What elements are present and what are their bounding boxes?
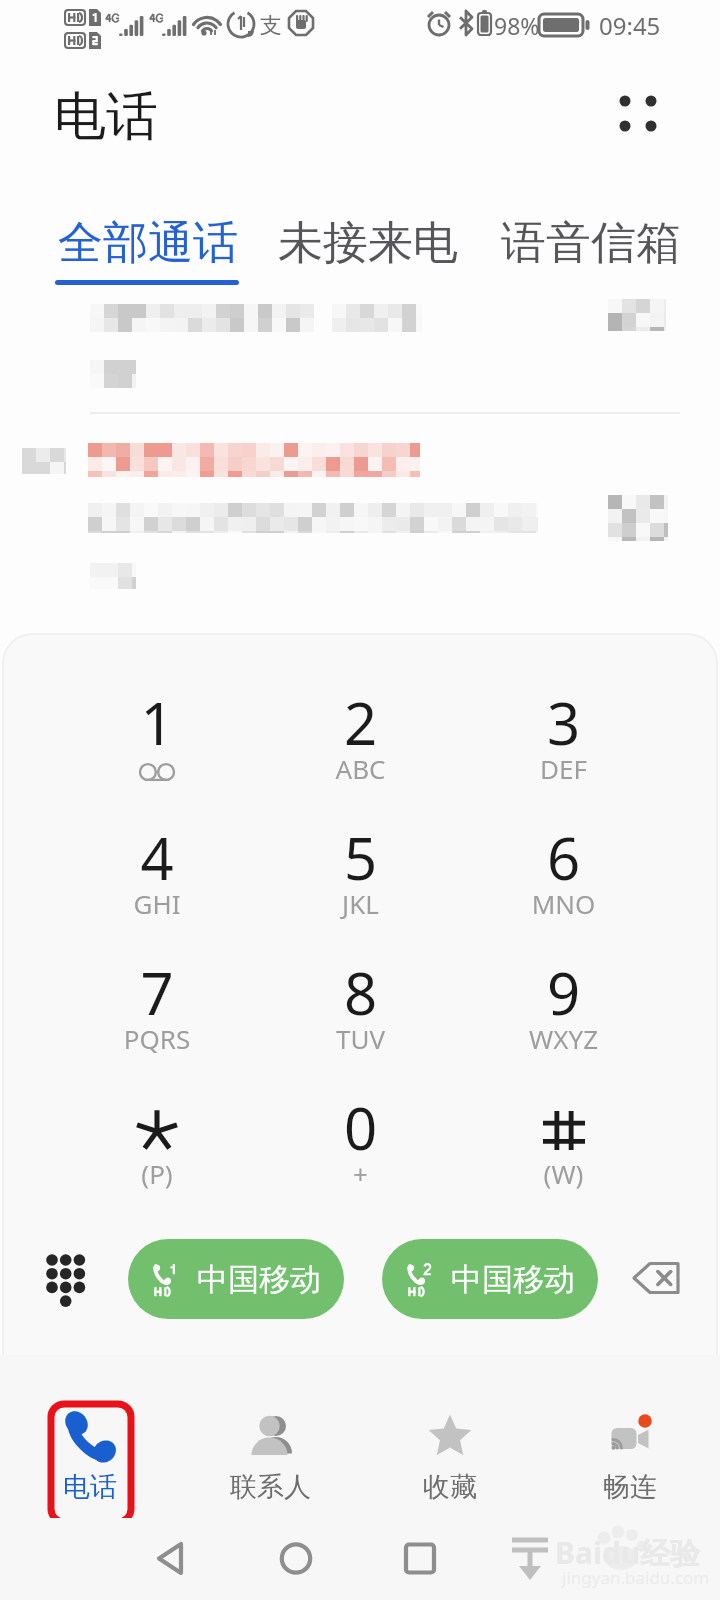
staticText: 收藏 xyxy=(423,1470,477,1504)
staticText: (W) xyxy=(462,1156,665,1191)
button[interactable]: 中国移动 xyxy=(382,1239,598,1319)
staticText: + xyxy=(259,1156,462,1191)
staticText: JKL xyxy=(259,886,462,921)
button[interactable]: 4 xyxy=(55,793,259,928)
button[interactable]: 3 xyxy=(462,658,665,793)
staticText: 中国移动 xyxy=(451,1260,575,1299)
button[interactable]: 未接来电 xyxy=(266,215,469,311)
staticText: 联系人 xyxy=(230,1470,311,1504)
button[interactable]: Call log entry 2 xyxy=(0,419,720,609)
staticText: 语音信箱 xyxy=(501,215,681,272)
button[interactable]: 收藏 xyxy=(360,1355,540,1518)
button[interactable]: Home xyxy=(256,1523,336,1595)
staticText: 2 xyxy=(259,683,462,762)
button[interactable]: 6 xyxy=(462,793,665,928)
button[interactable]: 联系人 xyxy=(180,1355,360,1518)
button[interactable]: 畅连 xyxy=(540,1355,720,1518)
staticText: jingyan.baidu.com xyxy=(562,1566,710,1589)
staticText: 98% xyxy=(494,10,540,41)
staticText: 电话 xyxy=(54,84,158,150)
staticText: PQRS xyxy=(55,1021,259,1056)
staticText: DEF xyxy=(462,751,665,786)
staticText: Baidu经验 xyxy=(555,1532,701,1573)
staticText: 5 xyxy=(259,818,462,897)
button[interactable]: 1 xyxy=(55,658,259,793)
staticText: 全部通话 xyxy=(58,215,238,272)
staticText: 未接来电 xyxy=(278,215,458,272)
button[interactable]: Back xyxy=(130,1523,210,1595)
button[interactable]: 2 xyxy=(259,658,462,793)
staticText: 8 xyxy=(259,953,462,1032)
staticText: TUV xyxy=(259,1021,462,1056)
staticText: 畅连 xyxy=(603,1470,657,1504)
button[interactable]: 9 xyxy=(462,928,665,1063)
staticText: 7 xyxy=(55,953,259,1032)
button[interactable]: (P) xyxy=(55,1063,259,1198)
button[interactable]: Call log entry 1 xyxy=(0,291,720,413)
button[interactable]: Delete xyxy=(616,1242,698,1314)
button[interactable]: Recent apps xyxy=(380,1523,460,1595)
staticText: 0 xyxy=(259,1088,462,1167)
staticText: 6 xyxy=(462,818,665,897)
button[interactable]: Show keypad xyxy=(24,1240,102,1318)
staticText: (P) xyxy=(55,1156,259,1191)
button[interactable]: 0 xyxy=(259,1063,462,1198)
staticText: 3 xyxy=(462,683,665,762)
button[interactable]: 8 xyxy=(259,928,462,1063)
staticText: WXYZ xyxy=(462,1021,665,1056)
staticText: GHI xyxy=(55,886,259,921)
button[interactable]: 语音信箱 xyxy=(489,215,692,311)
staticText: 1 xyxy=(55,683,259,762)
button[interactable]: 5 xyxy=(259,793,462,928)
button[interactable]: 中国移动 xyxy=(128,1239,344,1319)
button[interactable]: 7 xyxy=(55,928,259,1063)
staticText: MNO xyxy=(462,886,665,921)
button[interactable]: (W) xyxy=(462,1063,665,1198)
button[interactable]: 全部通话 xyxy=(46,215,249,311)
staticText: ABC xyxy=(259,751,462,786)
staticText: 9 xyxy=(462,953,665,1032)
button[interactable]: More options xyxy=(590,65,686,161)
staticText: 09:45 xyxy=(599,9,661,42)
staticText: 支 xyxy=(260,12,282,40)
button[interactable]: 电话 xyxy=(0,1355,180,1518)
staticText: 4 xyxy=(55,818,259,897)
staticText: 中国移动 xyxy=(197,1260,321,1299)
staticText: 电话 xyxy=(63,1470,117,1504)
